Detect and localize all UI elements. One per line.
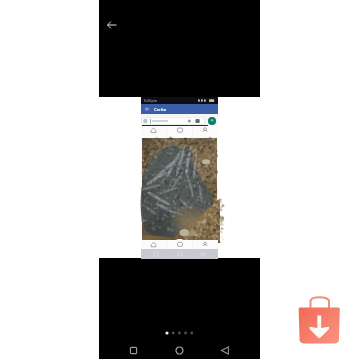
button[interactable]: Back — [217, 342, 234, 359]
button[interactable]: Chat bubble — [208, 117, 216, 125]
button[interactable]: Home — [171, 342, 188, 359]
staticText: Cerita — [154, 107, 167, 113]
button[interactable]: Back — [100, 13, 124, 37]
staticText: 6:24 pm — [144, 98, 157, 103]
button[interactable]: Download — [295, 292, 345, 342]
button[interactable]: Search — [141, 117, 205, 125]
button[interactable]: Recents — [125, 342, 142, 359]
